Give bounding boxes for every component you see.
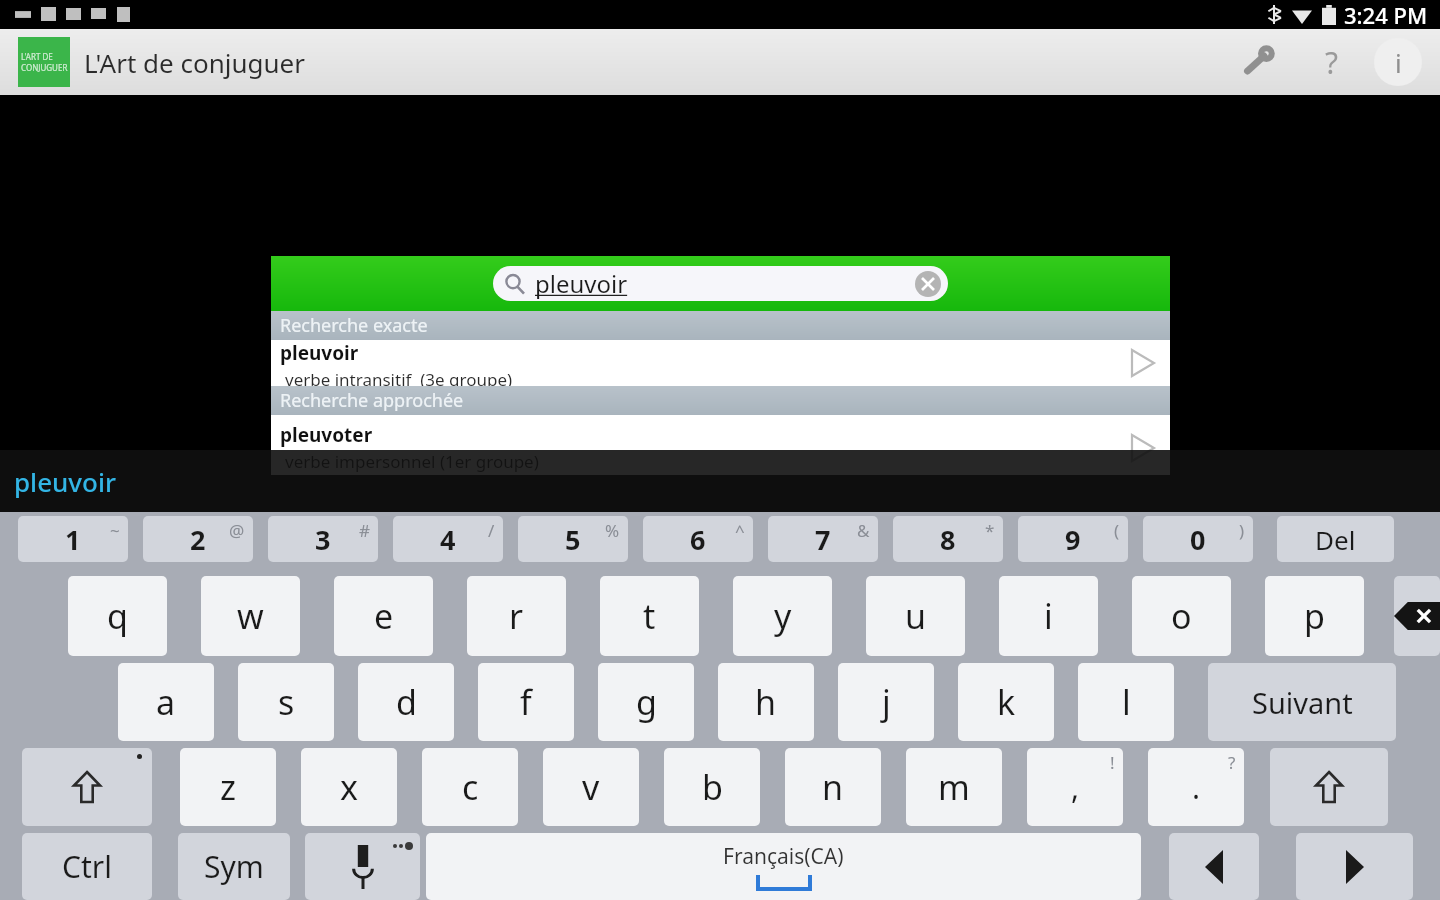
button[interactable]: Shift — [1270, 748, 1388, 826]
button[interactable]: pleuvoir — [493, 266, 948, 301]
button[interactable]: a — [118, 663, 214, 741]
button[interactable]: 6 — [643, 516, 753, 562]
staticText: Suivant — [1252, 683, 1353, 722]
button[interactable]: x — [301, 748, 397, 826]
button[interactable]: 0 — [1143, 516, 1253, 562]
button[interactable]: Settings — [1230, 34, 1286, 90]
button[interactable]: , — [1027, 748, 1123, 826]
staticText: z — [220, 764, 236, 810]
button[interactable]: Sym — [178, 833, 290, 900]
staticText: p — [1304, 593, 1325, 639]
staticText: ) — [1239, 519, 1245, 542]
staticText: r — [509, 593, 524, 639]
staticText: L'Art de conjuguer — [84, 45, 306, 80]
button[interactable]: pleuvoter — [271, 420, 1170, 475]
staticText: 9 — [1065, 521, 1081, 558]
staticText: 2 — [190, 521, 206, 558]
staticText: * — [985, 519, 995, 542]
staticText: verbe intransitif (3e groupe) — [285, 368, 513, 386]
staticText: . — [1192, 767, 1201, 808]
staticText: k — [997, 679, 1016, 725]
button[interactable]: n — [785, 748, 881, 826]
staticText: % — [605, 519, 620, 542]
button[interactable]: d — [358, 663, 454, 741]
staticText: d — [396, 679, 417, 725]
button[interactable]: s — [238, 663, 334, 741]
button[interactable]: h — [718, 663, 814, 741]
staticText: 8 — [940, 521, 956, 558]
staticText: Ctrl — [62, 846, 112, 887]
staticText: ! — [1110, 751, 1115, 774]
staticText: i — [1044, 593, 1053, 639]
button[interactable]: 5 — [518, 516, 628, 562]
staticText: y — [774, 593, 792, 639]
button[interactable]: 2 — [143, 516, 253, 562]
staticText: @ — [229, 519, 245, 542]
button[interactable]: pleuvoir — [271, 340, 1170, 386]
staticText: 0 — [1190, 521, 1206, 558]
button[interactable]: Move left — [1169, 833, 1259, 900]
staticText: ~ — [110, 519, 120, 542]
button[interactable]: Clear search — [915, 271, 941, 297]
button[interactable]: q — [68, 576, 167, 656]
button[interactable]: 9 — [1018, 516, 1128, 562]
button[interactable]: . — [1148, 748, 1244, 826]
staticText: c — [462, 764, 479, 810]
button[interactable]: p — [1265, 576, 1364, 656]
button[interactable]: c — [422, 748, 518, 826]
button[interactable]: y — [733, 576, 832, 656]
staticText: t — [643, 593, 656, 639]
button[interactable]: Voice input — [305, 833, 420, 900]
button[interactable]: v — [543, 748, 639, 826]
staticText: i — [1395, 45, 1402, 80]
button[interactable]: Suivant — [1208, 663, 1396, 741]
button[interactable]: m — [906, 748, 1002, 826]
staticText: 7 — [815, 521, 831, 558]
button[interactable]: Shift — [22, 748, 152, 826]
staticText: # — [359, 519, 370, 542]
staticText: & — [857, 519, 870, 542]
button[interactable]: r — [467, 576, 566, 656]
button[interactable]: o — [1132, 576, 1231, 656]
button[interactable]: z — [180, 748, 276, 826]
button[interactable]: i — [999, 576, 1098, 656]
staticText: 5 — [565, 521, 581, 558]
staticText: 3 — [315, 521, 331, 558]
button[interactable]: e — [334, 576, 433, 656]
staticText: v — [582, 764, 600, 810]
staticText: 4 — [440, 521, 456, 558]
button[interactable]: Backspace — [1394, 576, 1440, 656]
staticText: CONJUGUER — [21, 62, 68, 73]
staticText: l — [1122, 679, 1131, 725]
staticText: u — [905, 593, 927, 639]
button[interactable]: Del — [1277, 516, 1394, 562]
button[interactable]: b — [664, 748, 760, 826]
button[interactable]: Ctrl — [22, 833, 152, 900]
button[interactable]: Information — [1374, 38, 1422, 86]
button[interactable]: g — [598, 663, 694, 741]
button[interactable]: 3 — [268, 516, 378, 562]
staticText: , — [1071, 767, 1080, 808]
staticText: Recherche exacte — [280, 313, 428, 338]
button[interactable]: k — [958, 663, 1054, 741]
button[interactable]: j — [838, 663, 934, 741]
button[interactable]: 8 — [893, 516, 1003, 562]
button[interactable]: w — [201, 576, 300, 656]
button[interactable]: Help — [1304, 34, 1360, 90]
button[interactable]: 1 — [18, 516, 128, 562]
staticText: pleuvoir — [535, 267, 628, 300]
button[interactable]: t — [600, 576, 699, 656]
button[interactable]: 7 — [768, 516, 878, 562]
button[interactable]: Space — [426, 833, 1141, 900]
button[interactable]: f — [478, 663, 574, 741]
button[interactable]: u — [866, 576, 965, 656]
staticText: pleuvoir — [14, 464, 116, 499]
button[interactable]: 4 — [393, 516, 503, 562]
staticText: q — [107, 593, 128, 639]
staticText: ^ — [735, 519, 745, 542]
button[interactable]: l — [1078, 663, 1174, 741]
staticText: f — [520, 679, 532, 725]
staticText: b — [702, 764, 723, 810]
staticText: verbe impersonnel (1er groupe) — [285, 450, 539, 473]
button[interactable]: Move right — [1296, 833, 1413, 900]
